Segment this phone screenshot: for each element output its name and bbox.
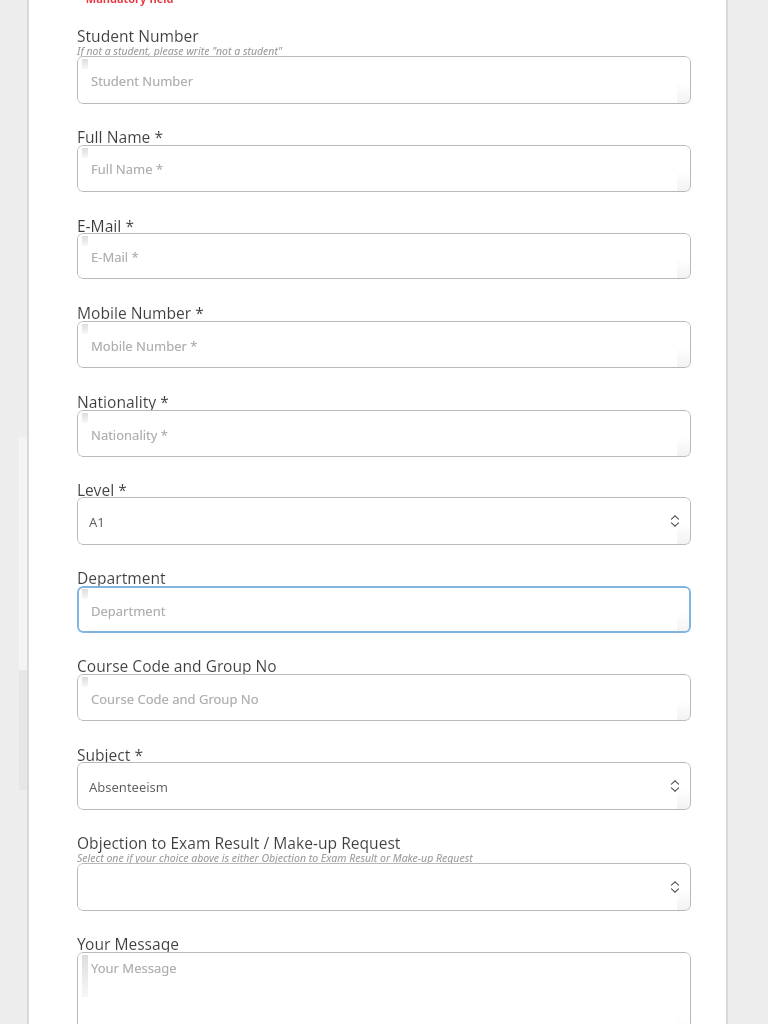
button[interactable]: Full Name * (77, 145, 691, 192)
staticText: Student Number (77, 25, 199, 46)
button[interactable]: Department (77, 586, 691, 633)
button[interactable]: A1 (77, 497, 691, 545)
button[interactable]: Open dropdown (77, 863, 691, 911)
staticText: E-Mail * (77, 215, 134, 236)
staticText: Absenteeism (89, 778, 168, 796)
staticText: Subject * (77, 744, 143, 765)
button[interactable]: Mobile Number * (77, 321, 691, 368)
staticText: A1 (89, 513, 105, 531)
staticText: Full Name * (91, 160, 164, 178)
staticText: Department (77, 567, 166, 588)
button[interactable]: Absenteeism (77, 762, 691, 810)
staticText: Student Number (91, 72, 194, 90)
staticText: Your Message (77, 933, 180, 954)
staticText: If not a student, please write "not a st… (77, 44, 283, 58)
button[interactable]: Your Message (77, 952, 691, 1024)
button[interactable]: Student Number (77, 56, 691, 104)
other: Open dropdown (669, 880, 681, 894)
staticText: Nationality * (91, 426, 168, 444)
button[interactable]: Nationality * (77, 410, 691, 457)
staticText: * Mandatory field (77, 0, 174, 6)
staticText: Mobile Number * (91, 337, 198, 355)
other: Open dropdown (669, 779, 681, 793)
staticText: Select one if your choice above is eithe… (77, 851, 473, 865)
staticText: Your Message (91, 959, 177, 977)
staticText: Objection to Exam Result / Make-up Reque… (77, 832, 401, 853)
staticText: Course Code and Group No (77, 655, 277, 676)
staticText: Level * (77, 479, 127, 500)
button[interactable]: E-Mail * (77, 233, 691, 279)
button[interactable]: Course Code and Group No (77, 674, 691, 721)
staticText: Department (91, 602, 166, 620)
staticText: Mobile Number * (77, 302, 204, 323)
staticText: Course Code and Group No (91, 690, 259, 708)
staticText: E-Mail * (91, 248, 139, 266)
other: Open dropdown (669, 514, 681, 528)
staticText: Nationality * (77, 391, 169, 412)
staticText: Full Name * (77, 126, 163, 147)
